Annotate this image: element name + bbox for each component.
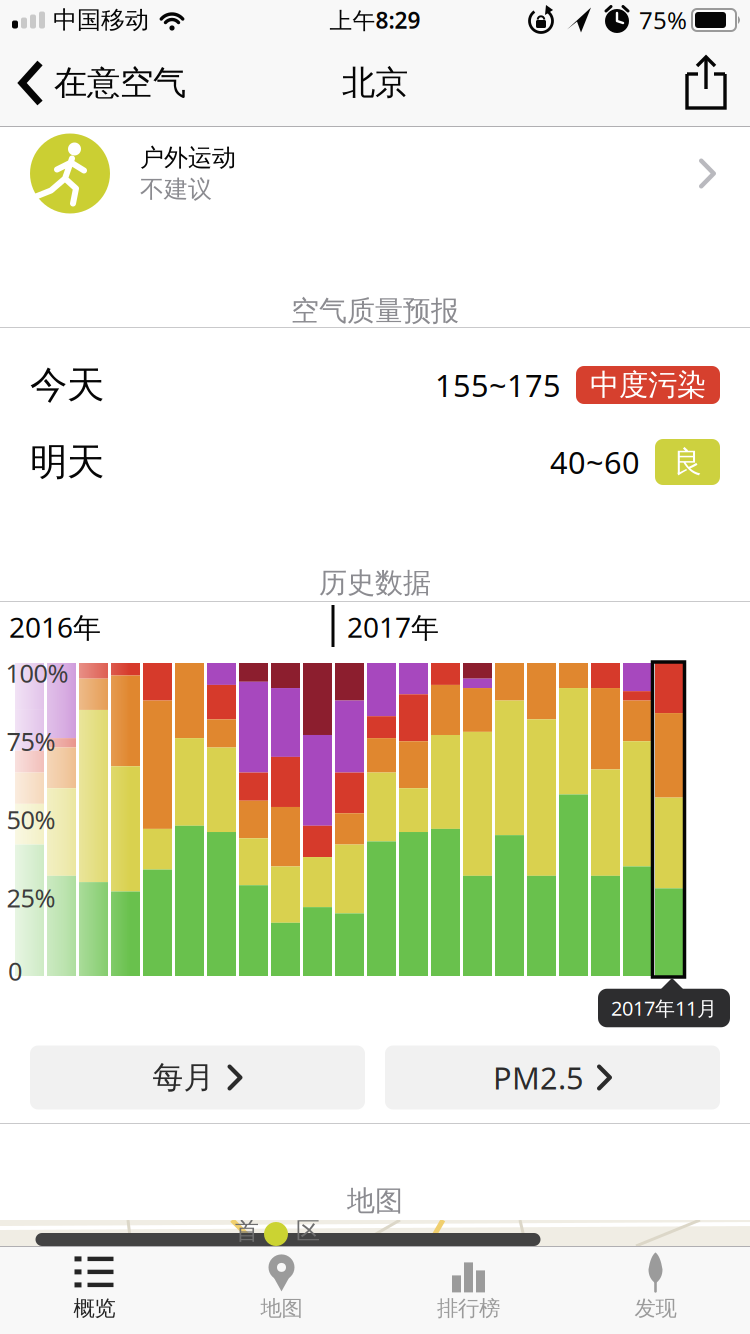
staticText: 0	[8, 954, 22, 988]
staticText: 不建议	[140, 174, 212, 204]
staticText: 地图	[347, 1184, 403, 1218]
staticText: PM2.5	[493, 1057, 584, 1098]
staticText: 北京	[342, 62, 408, 103]
staticText: 75%	[639, 4, 687, 36]
button[interactable]: 每月	[30, 1045, 365, 1109]
staticText: 概览	[73, 1295, 115, 1322]
staticText: 历史数据	[319, 566, 431, 600]
staticText: 户外运动	[140, 143, 236, 172]
staticText: 2017年11月	[611, 995, 717, 1021]
staticText: 155~175	[435, 365, 561, 405]
staticText: 在意空气	[54, 62, 186, 103]
staticText: 地图	[260, 1295, 302, 1322]
button[interactable]	[684, 55, 750, 111]
staticText: 明天	[30, 439, 104, 485]
staticText: 25%	[6, 881, 55, 914]
staticText: 空气质量预报	[291, 294, 459, 328]
staticText: 中度污染	[590, 367, 706, 403]
staticText: 良	[673, 444, 702, 480]
staticText: 2016年	[9, 608, 101, 646]
staticText: 区	[296, 1216, 320, 1246]
staticText: 发现	[634, 1295, 676, 1322]
button[interactable]: 在意空气	[0, 60, 186, 106]
button[interactable]: PM2.5	[385, 1045, 720, 1109]
staticText: 75%	[6, 724, 55, 758]
staticText: 每月	[152, 1059, 214, 1096]
staticText: 2017年	[347, 608, 439, 646]
staticText: 首	[235, 1216, 259, 1246]
button[interactable]: 发现	[562, 1247, 749, 1334]
staticText: 上午8:29	[329, 5, 420, 35]
staticText: 50%	[6, 803, 55, 836]
staticText: 中国移动	[53, 5, 149, 35]
button[interactable]: 户外运动	[0, 127, 750, 232]
staticText: 排行榜	[437, 1295, 500, 1322]
button[interactable]: 地图	[188, 1247, 375, 1334]
button[interactable]: 排行榜	[375, 1247, 562, 1334]
button[interactable]: 概览	[1, 1247, 188, 1334]
staticText: 40~60	[550, 442, 640, 482]
staticText: 100%	[5, 656, 68, 690]
staticText: 今天	[30, 362, 104, 408]
